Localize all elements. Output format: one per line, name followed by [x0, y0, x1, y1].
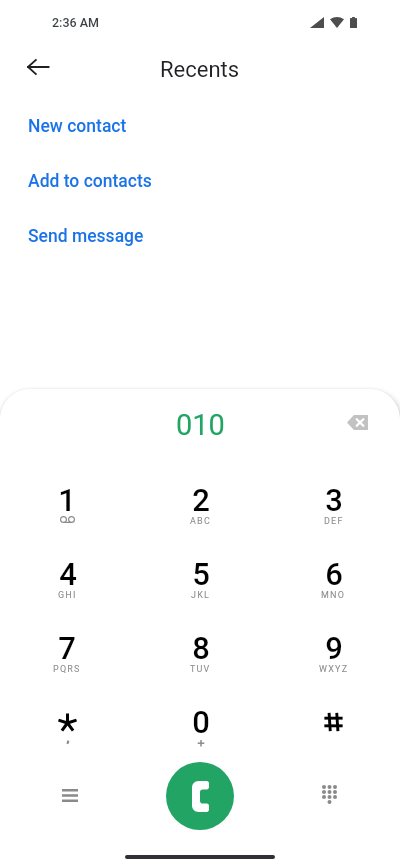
staticText: 4	[59, 556, 77, 592]
button[interactable]: New contact	[0, 99, 400, 154]
button[interactable]: Call log	[48, 773, 92, 817]
staticText: 1	[58, 482, 76, 518]
button[interactable]: 8 TUV	[134, 630, 267, 704]
button[interactable]: Pound	[267, 704, 400, 778]
button[interactable]: 5 JKL	[134, 556, 267, 630]
staticText: JKL	[191, 590, 211, 601]
button[interactable]: Add to contacts	[0, 154, 400, 209]
staticText: 0	[192, 704, 210, 740]
button[interactable]: 7 PQRS	[0, 630, 134, 704]
staticText: MNO	[321, 590, 346, 601]
staticText: ABC	[190, 516, 211, 527]
staticText: Send message	[28, 226, 144, 247]
button[interactable]: 1 voicemail	[0, 482, 134, 556]
button[interactable]: 9 WXYZ	[267, 630, 400, 704]
staticText: 2:36 AM	[52, 15, 100, 30]
staticText: 010	[176, 408, 225, 442]
staticText: 5	[192, 556, 210, 592]
staticText: Add to contacts	[28, 171, 152, 192]
staticText: PQRS	[53, 664, 81, 675]
staticText: 8	[192, 630, 210, 666]
staticText: 7	[58, 630, 76, 666]
button[interactable]: 4 GHI	[0, 556, 134, 630]
button[interactable]: 0 +	[134, 704, 267, 778]
button[interactable]: Backspace	[335, 400, 379, 444]
staticText: New contact	[28, 116, 127, 137]
button[interactable]: 3 DEF	[267, 482, 400, 556]
staticText: 6	[325, 556, 343, 592]
staticText: Recents	[160, 57, 240, 83]
staticText: 3	[325, 482, 343, 518]
staticText: 9	[325, 630, 343, 666]
staticText: DEF	[324, 516, 344, 527]
button[interactable]: Call	[166, 762, 234, 830]
button[interactable]: 2 ABC	[134, 482, 267, 556]
staticText: GHI	[58, 590, 77, 601]
staticText: 2	[192, 482, 210, 518]
button[interactable]: Back	[16, 45, 60, 89]
button[interactable]: Dialpad	[307, 772, 351, 816]
staticText: WXYZ	[319, 664, 349, 675]
button[interactable]: Star	[0, 704, 134, 778]
staticText: TUV	[190, 664, 211, 675]
button[interactable]: 6 MNO	[267, 556, 400, 630]
button[interactable]: Send message	[0, 209, 400, 264]
